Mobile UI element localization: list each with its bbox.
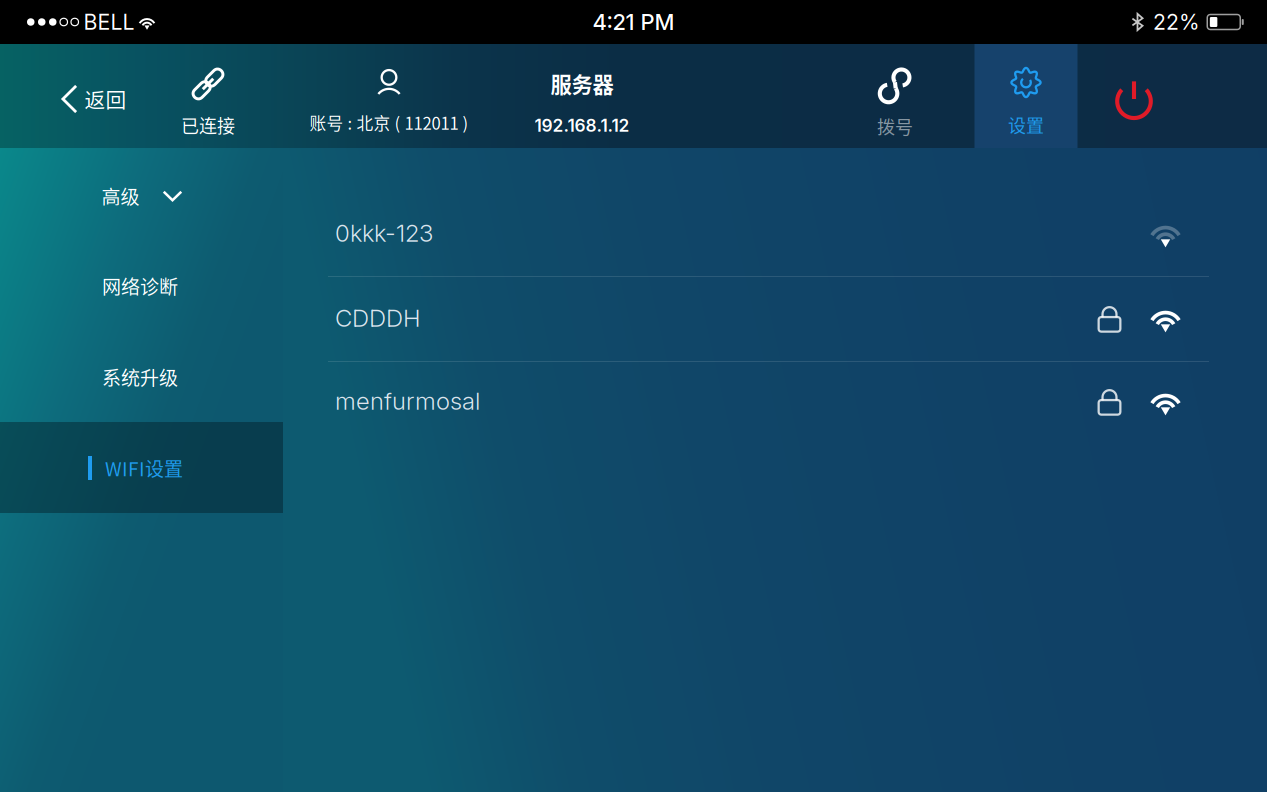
button[interactable]: menfurmosal bbox=[283, 359, 1267, 442]
button[interactable]: 返回 bbox=[45, 60, 142, 138]
button[interactable]: 系统升级 bbox=[0, 331, 283, 422]
staticText: 192.168.1.12 bbox=[534, 115, 629, 136]
button[interactable]: 网络诊断 bbox=[0, 240, 283, 331]
button[interactable]: Power bbox=[1086, 47, 1182, 151]
staticText: CDDDH bbox=[335, 303, 421, 332]
button[interactable]: 0kkk-123 bbox=[283, 191, 1267, 274]
staticText: 系统升级 bbox=[102, 363, 178, 391]
staticText: 高级 bbox=[101, 182, 139, 210]
button[interactable]: WIFI设置 bbox=[0, 422, 283, 513]
staticText: 0kkk-123 bbox=[335, 218, 433, 247]
staticText: BELL bbox=[83, 9, 134, 35]
button[interactable]: 拨号 bbox=[843, 44, 946, 170]
staticText: WIFI设置 bbox=[105, 454, 183, 482]
staticText: 服务器 bbox=[550, 68, 613, 99]
button[interactable]: CDDDH bbox=[283, 276, 1267, 359]
staticText: 网络诊断 bbox=[102, 272, 178, 300]
staticText: 拨号 bbox=[877, 113, 913, 139]
staticText: 返回 bbox=[84, 84, 126, 114]
staticText: 4:21 PM bbox=[592, 9, 674, 35]
staticText: 已连接 bbox=[181, 112, 235, 138]
button[interactable]: 高级 bbox=[83, 152, 200, 240]
staticText: 设置 bbox=[1008, 111, 1044, 138]
staticText: 账号 : 北京 ( 112011 ) bbox=[309, 110, 468, 134]
staticText: menfurmosal bbox=[335, 386, 480, 415]
staticText: 22% bbox=[1153, 9, 1200, 35]
button[interactable]: 设置 bbox=[974, 43, 1077, 170]
